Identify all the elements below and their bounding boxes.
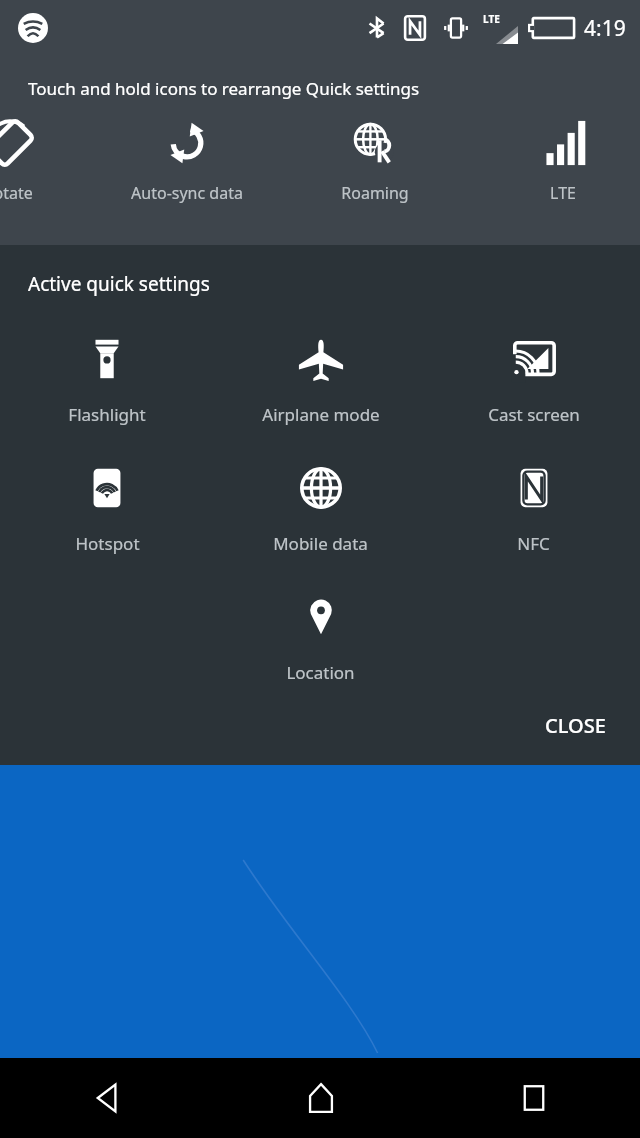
- staticText: CLOSE: [545, 712, 606, 739]
- button[interactable]: Cast screen: [427, 331, 640, 430]
- staticText: Active quick settings: [28, 271, 210, 297]
- button[interactable]: CLOSE: [533, 704, 618, 747]
- staticText: Cast screen: [488, 403, 580, 426]
- button[interactable]: Recent apps: [427, 1058, 640, 1138]
- button[interactable]: Auto-sync data: [107, 120, 267, 204]
- staticText: Touch and hold icons to rearrange Quick …: [28, 77, 420, 100]
- staticText: LTE: [550, 182, 576, 204]
- staticText: Roaming: [341, 182, 409, 204]
- staticText: 4:19: [584, 14, 626, 43]
- button[interactable]: Mobile data: [214, 460, 427, 559]
- button[interactable]: Flashlight: [0, 331, 214, 430]
- button[interactable]: Hotspot: [0, 460, 214, 559]
- button[interactable]: Location: [214, 589, 427, 688]
- button[interactable]: Airplane mode: [214, 331, 427, 430]
- button[interactable]: NFC: [427, 460, 640, 559]
- staticText: Airplane mode: [262, 403, 380, 426]
- staticText: rotate: [0, 182, 33, 204]
- staticText: NFC: [517, 532, 550, 555]
- staticText: Flashlight: [68, 403, 146, 426]
- button[interactable]: Back: [0, 1058, 214, 1138]
- button[interactable]: LTE: [483, 120, 640, 204]
- staticText: Hotspot: [75, 532, 140, 555]
- staticText: Auto-sync data: [131, 182, 243, 204]
- button[interactable]: Roaming: [295, 120, 455, 204]
- button[interactable]: rotate: [0, 120, 90, 204]
- button[interactable]: Home: [214, 1058, 427, 1138]
- staticText: Mobile data: [273, 532, 368, 555]
- staticText: Location: [286, 661, 355, 684]
- staticText: LTE: [483, 12, 500, 26]
